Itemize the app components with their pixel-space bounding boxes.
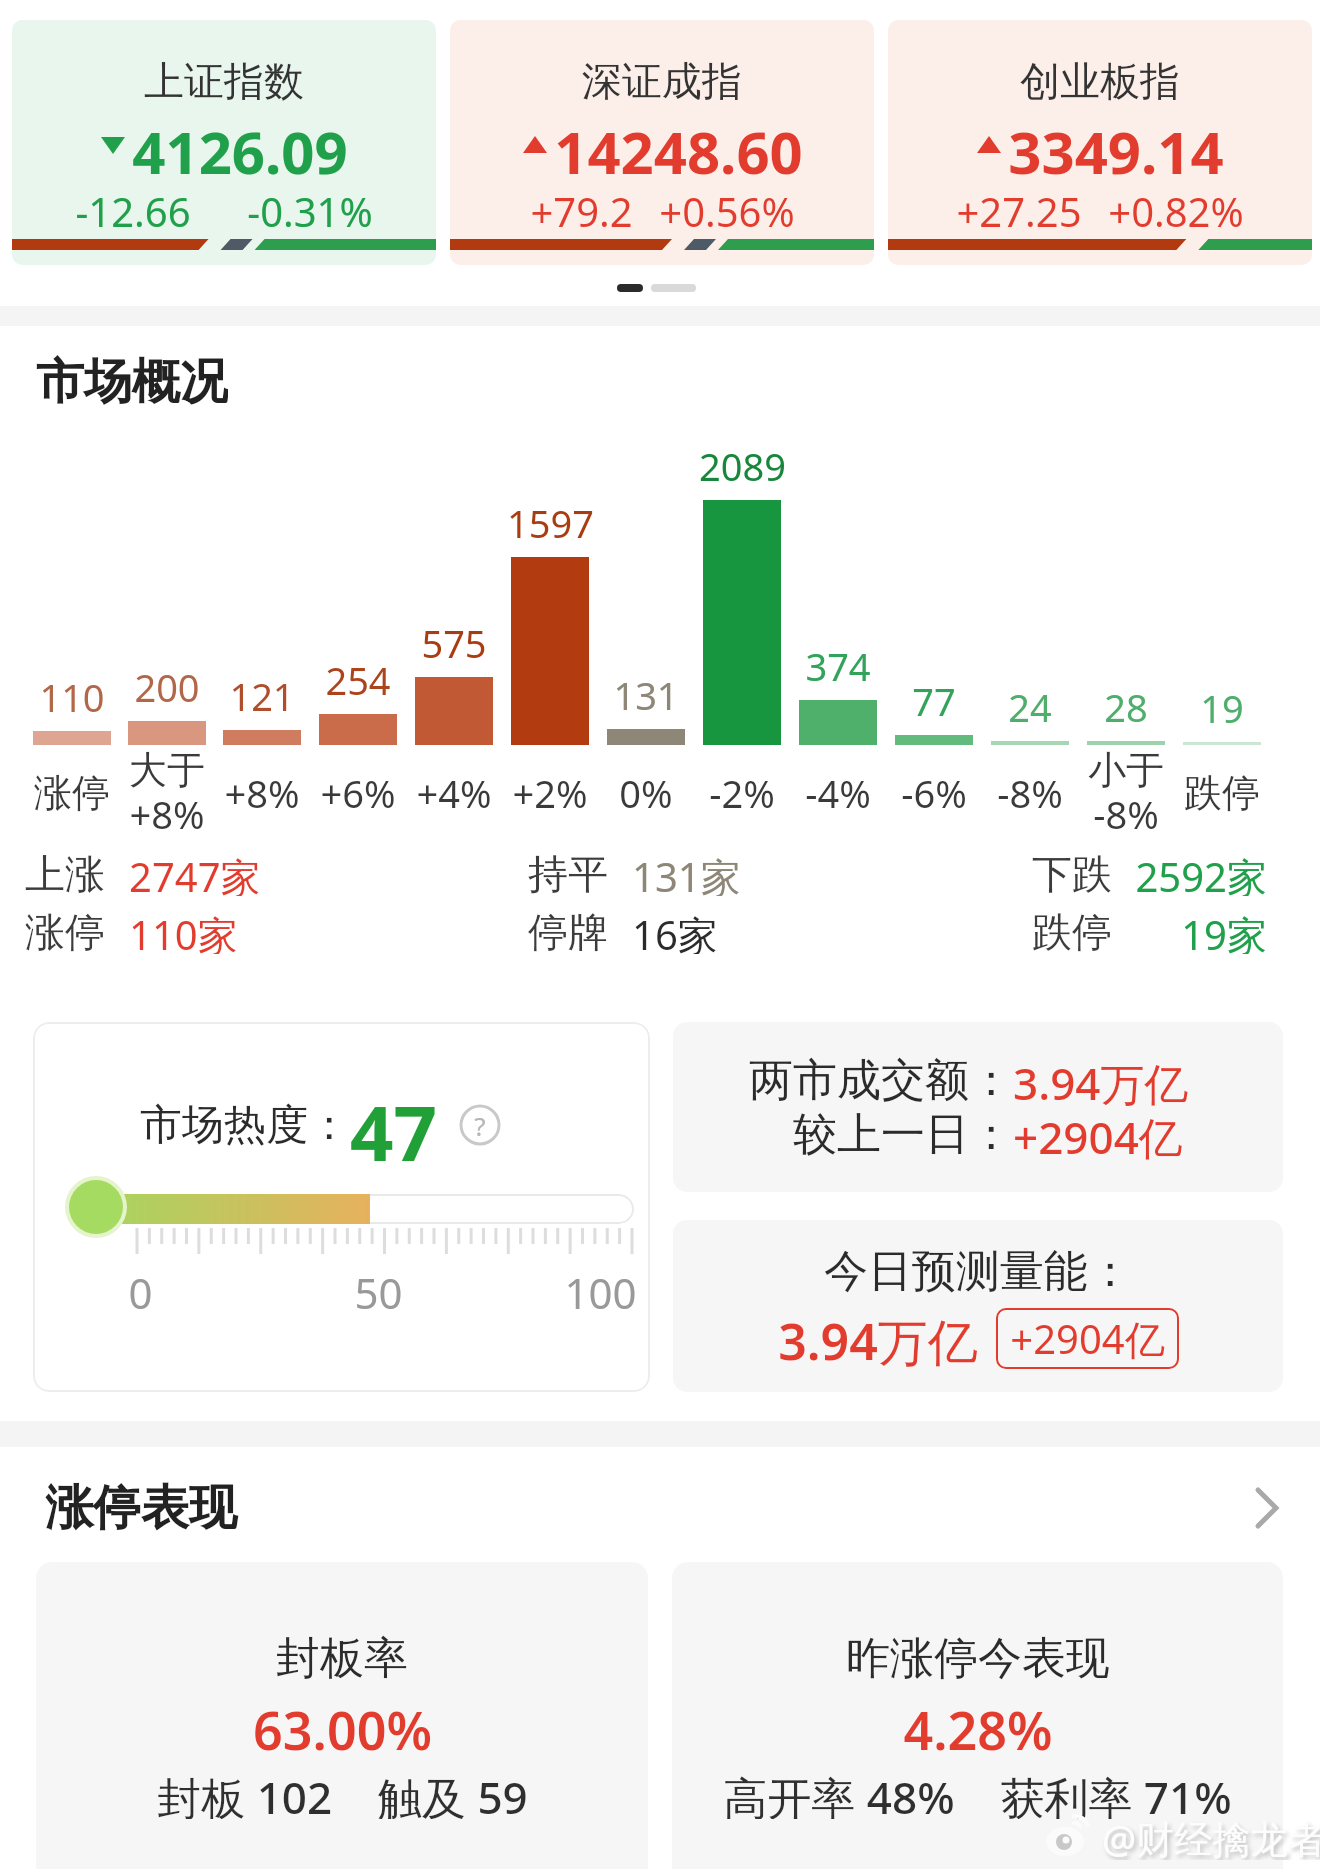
staticText: 2089 (699, 440, 786, 492)
staticText: 持平 (528, 849, 608, 896)
staticText: 小于 -8% (1088, 746, 1164, 840)
staticText: @财经擒龙者 (1102, 1812, 1320, 1860)
staticText: 3.94万亿 (1013, 1053, 1273, 1107)
staticText: 0 (128, 1264, 153, 1321)
staticText: 24 (1008, 681, 1052, 733)
staticText: 254 (325, 654, 391, 706)
staticText: 2592家 (1135, 849, 1267, 896)
staticText: -8% (997, 767, 1063, 819)
button[interactable]: 封板率 (36, 1562, 648, 1869)
staticText: 575 (421, 617, 487, 669)
staticText: -6% (901, 767, 967, 819)
staticText: -4% (805, 767, 871, 819)
staticText: 47 (350, 1080, 437, 1170)
staticText: -12.66 (75, 184, 191, 231)
staticText: 创业板指 (1020, 56, 1180, 103)
button[interactable]: 创业板指 (888, 20, 1312, 265)
staticText: 50 (354, 1264, 403, 1321)
staticText: +0.82% (1108, 184, 1244, 231)
button[interactable]: 昨涨停今表现 (672, 1562, 1283, 1869)
staticText: 0% (619, 767, 673, 819)
staticText: +27.25 (956, 184, 1082, 231)
staticText: 3.94万亿 (778, 1307, 978, 1369)
staticText: 高开率 48% 获利率 71% (723, 1767, 1232, 1819)
button[interactable]: 深证成指 (450, 20, 874, 265)
staticText: -2% (709, 767, 775, 819)
staticText: 较上一日： (673, 1107, 1013, 1161)
staticText: 上证指数 (144, 56, 304, 103)
staticText: 封板 102 触及 59 (157, 1767, 528, 1819)
staticText: 涨停表现 (45, 1478, 237, 1538)
staticText: 100 (564, 1264, 637, 1321)
staticText: 封板率 (276, 1631, 408, 1683)
staticText: +8% (224, 767, 300, 819)
staticText: 63.00% (253, 1694, 432, 1754)
staticText: 14248.60 (554, 112, 803, 178)
button[interactable]: 两市成交额： (673, 1022, 1283, 1192)
staticText: +2% (512, 767, 588, 819)
staticText: 今日预测量能： (824, 1244, 1132, 1296)
staticText: +2904亿 (1010, 1311, 1165, 1366)
staticText: 停牌 (528, 907, 608, 954)
staticText: 涨停 (25, 907, 105, 954)
staticText: 市场热度： (140, 1099, 350, 1152)
staticText: 121 (229, 670, 295, 722)
staticText: 1597 (507, 497, 594, 549)
staticText: 19 (1200, 682, 1244, 734)
staticText: 200 (134, 661, 200, 713)
staticText: 16家 (632, 907, 718, 954)
staticText: 4.28% (903, 1694, 1053, 1754)
staticText: 跌停 (1032, 907, 1112, 954)
staticText: ? (474, 1108, 486, 1143)
staticText: -0.31% (247, 184, 373, 231)
staticText: +6% (320, 767, 396, 819)
staticText: 19家 (1181, 907, 1267, 954)
staticText: 2747家 (129, 849, 261, 896)
staticText: 131 (613, 669, 679, 721)
staticText: 市场概况 (36, 352, 228, 410)
staticText: 昨涨停今表现 (846, 1631, 1110, 1683)
staticText: 跌停 (1184, 769, 1260, 817)
staticText: +2904亿 (1013, 1107, 1273, 1161)
button[interactable]: 涨停表现 (45, 1478, 1278, 1538)
staticText: 110 (39, 671, 105, 723)
staticText: 上涨 (25, 849, 105, 896)
staticText: 涨停 (34, 769, 110, 817)
staticText: 110家 (129, 907, 238, 954)
staticText: 4126.09 (132, 112, 348, 178)
staticText: 深证成指 (582, 56, 742, 103)
staticText: 374 (805, 640, 871, 692)
staticText: 131家 (632, 849, 741, 896)
button[interactable]: 市场热度： (33, 1022, 650, 1392)
staticText: 下跌 (1032, 849, 1112, 896)
staticText: +79.2 (530, 184, 633, 231)
staticText: +0.56% (659, 184, 795, 231)
staticText: 两市成交额： (673, 1053, 1013, 1107)
staticText: 77 (912, 675, 956, 727)
button[interactable]: 上证指数 (12, 20, 436, 265)
staticText: 28 (1104, 681, 1148, 733)
button[interactable]: 今日预测量能： (673, 1220, 1283, 1392)
staticText: +4% (416, 767, 492, 819)
staticText: 3349.14 (1008, 112, 1224, 178)
staticText: 大于 +8% (129, 746, 205, 840)
